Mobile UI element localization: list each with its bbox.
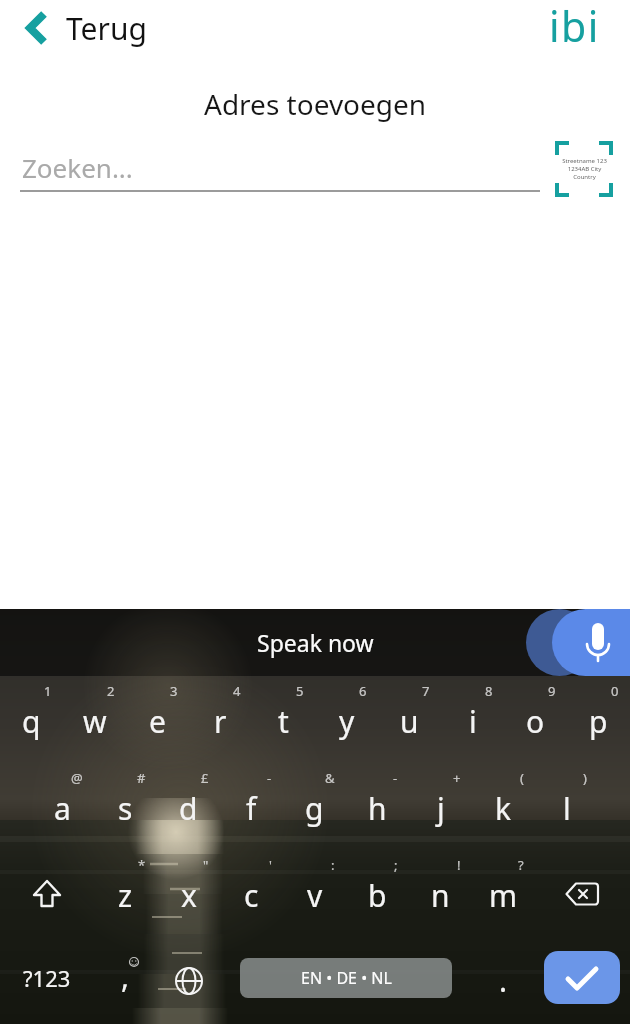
- staticText: ,: [121, 956, 130, 997]
- staticText: d: [179, 788, 198, 829]
- staticText: #: [137, 769, 146, 787]
- staticText: 9: [548, 682, 556, 700]
- staticText: q: [22, 701, 41, 742]
- button[interactable]: EN • DE • NL: [220, 937, 472, 1024]
- button[interactable]: [0, 850, 94, 937]
- button[interactable]: Terug: [20, 6, 147, 50]
- button[interactable]: v: [283, 850, 346, 937]
- button[interactable]: l: [535, 763, 598, 850]
- button[interactable]: k: [472, 763, 535, 850]
- staticText: -: [393, 769, 398, 787]
- staticText: 8: [485, 682, 493, 700]
- staticText: p: [589, 701, 608, 742]
- button[interactable]: r: [189, 676, 252, 763]
- staticText: v: [307, 875, 323, 916]
- staticText: b: [368, 875, 387, 916]
- button[interactable]: t: [252, 676, 315, 763]
- staticText: Terug: [66, 8, 147, 49]
- staticText: EN • DE • NL: [301, 967, 392, 989]
- staticText: o: [526, 701, 545, 742]
- staticText: ?123: [23, 963, 71, 993]
- button[interactable]: i: [441, 676, 504, 763]
- staticText: h: [368, 788, 387, 829]
- staticText: Streetname 123 1234AB City Country: [562, 157, 607, 181]
- staticText: j: [437, 788, 445, 829]
- staticText: :: [331, 856, 335, 874]
- staticText: e: [149, 701, 166, 742]
- staticText: Zoeken...: [22, 150, 133, 185]
- button[interactable]: ,: [94, 937, 157, 1024]
- staticText: Adres toevoegen: [204, 85, 427, 123]
- staticText: Speak now: [257, 627, 374, 658]
- button[interactable]: f: [220, 763, 283, 850]
- staticText: f: [246, 788, 257, 829]
- staticText: &: [325, 769, 335, 787]
- staticText: i: [469, 701, 477, 742]
- button[interactable]: o: [504, 676, 567, 763]
- staticText: l: [563, 788, 571, 829]
- staticText: ': [269, 856, 272, 874]
- staticText: g: [305, 788, 324, 829]
- button[interactable]: n: [409, 850, 472, 937]
- button[interactable]: g: [283, 763, 346, 850]
- staticText: m: [489, 875, 518, 916]
- staticText: 6: [359, 682, 367, 700]
- staticText: £: [201, 769, 209, 787]
- staticText: 5: [296, 682, 304, 700]
- staticText: c: [244, 875, 259, 916]
- button[interactable]: b: [346, 850, 409, 937]
- staticText: (: [520, 769, 524, 787]
- staticText: ibi: [549, 0, 600, 54]
- button[interactable]: ?123: [0, 937, 94, 1024]
- staticText: 7: [422, 682, 430, 700]
- button[interactable]: q: [0, 676, 63, 763]
- staticText: n: [431, 875, 450, 916]
- button[interactable]: e: [126, 676, 189, 763]
- button[interactable]: y: [315, 676, 378, 763]
- staticText: *: [138, 856, 146, 874]
- button[interactable]: [552, 609, 630, 676]
- staticText: .: [499, 960, 508, 1001]
- button[interactable]: m: [472, 850, 535, 937]
- button[interactable]: j: [409, 763, 472, 850]
- button[interactable]: Streetname 123 1234AB City Country: [555, 141, 613, 197]
- staticText: y: [339, 701, 355, 742]
- button[interactable]: .: [472, 937, 535, 1024]
- staticText: w: [83, 701, 107, 742]
- staticText: -: [267, 769, 272, 787]
- staticText: 2: [107, 682, 115, 700]
- button[interactable]: ibi: [549, 0, 600, 54]
- staticText: ?: [518, 856, 524, 874]
- staticText: +: [453, 769, 461, 787]
- staticText: r: [214, 701, 227, 742]
- button[interactable]: a: [31, 763, 94, 850]
- staticText: s: [118, 788, 133, 829]
- button[interactable]: [535, 850, 629, 937]
- staticText: ): [583, 769, 587, 787]
- button[interactable]: d: [157, 763, 220, 850]
- staticText: z: [118, 875, 133, 916]
- staticText: x: [181, 875, 197, 916]
- staticText: 4: [233, 682, 241, 700]
- staticText: k: [495, 788, 512, 829]
- button[interactable]: [535, 937, 629, 1024]
- button[interactable]: h: [346, 763, 409, 850]
- staticText: @: [71, 769, 83, 787]
- button[interactable]: c: [220, 850, 283, 937]
- staticText: 1: [44, 682, 52, 700]
- button[interactable]: [157, 937, 220, 1024]
- button[interactable]: z: [94, 850, 157, 937]
- staticText: t: [278, 701, 289, 742]
- button[interactable]: w: [63, 676, 126, 763]
- staticText: 0: [611, 682, 619, 700]
- button[interactable]: u: [378, 676, 441, 763]
- staticText: u: [400, 701, 419, 742]
- button[interactable]: x: [157, 850, 220, 937]
- staticText: a: [54, 788, 71, 829]
- button[interactable]: s: [94, 763, 157, 850]
- staticText: ;: [394, 856, 398, 874]
- staticText: !: [457, 856, 461, 874]
- staticText: ": [203, 856, 209, 874]
- staticText: 3: [170, 682, 178, 700]
- button[interactable]: p: [567, 676, 630, 763]
